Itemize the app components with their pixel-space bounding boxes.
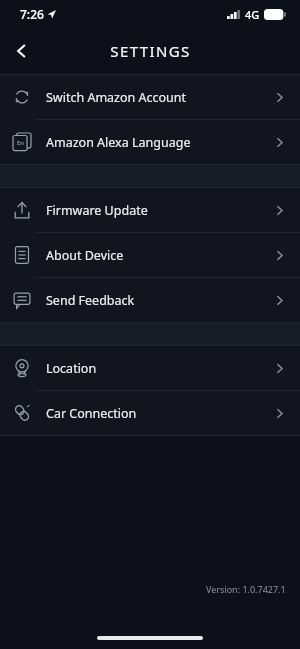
staticText: Version: 1.0.7427.1 — [206, 583, 286, 595]
button[interactable]: Car Connection — [0, 391, 300, 435]
staticText: Send Feedback — [46, 292, 273, 309]
staticText: Amazon Alexa Language — [46, 134, 273, 151]
staticText: En — [17, 139, 25, 147]
staticText: About Device — [46, 247, 273, 264]
staticText: SETTINGS — [110, 41, 191, 61]
staticText: Firmware Update — [46, 202, 273, 219]
staticText: Location — [46, 360, 273, 377]
staticText: Switch Amazon Account — [46, 89, 273, 106]
button[interactable]: Back — [0, 29, 44, 73]
button[interactable]: About Device — [0, 233, 300, 278]
button[interactable]: Firmware Update — [0, 188, 300, 233]
button[interactable]: Location — [0, 346, 300, 391]
staticText: 7:26 — [20, 6, 44, 22]
staticText: 4G — [245, 7, 260, 22]
button[interactable]: Switch Amazon Account — [0, 75, 300, 120]
button[interactable]: En — [0, 120, 300, 164]
button[interactable]: Send Feedback — [0, 278, 300, 322]
staticText: Car Connection — [46, 405, 273, 422]
